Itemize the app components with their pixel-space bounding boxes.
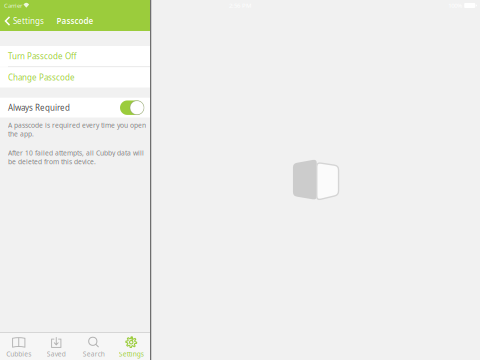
button[interactable]: Always Required	[0, 98, 150, 118]
staticText: Turn Passcode Off	[8, 51, 77, 61]
staticText: Always Required	[8, 102, 70, 113]
button[interactable]: Cubbies	[0, 333, 37, 360]
button[interactable]: Settings	[0, 11, 50, 31]
button[interactable]: Settings	[112, 333, 150, 360]
staticText: Change Passcode	[8, 72, 75, 83]
staticText: Settings	[13, 16, 44, 26]
staticText: Saved	[47, 349, 66, 358]
staticText: Cubbies	[6, 349, 31, 358]
staticText: Passcode	[56, 16, 93, 26]
button[interactable]: Search	[75, 333, 112, 360]
button[interactable]: Saved	[37, 333, 75, 360]
staticText: Search	[83, 349, 105, 358]
staticText: After 10 failed attempts, all Cubby data…	[8, 148, 144, 166]
button[interactable]: Change Passcode	[0, 67, 150, 88]
staticText: Carrier	[4, 1, 22, 10]
button[interactable]: Turn Passcode Off	[0, 46, 150, 66]
staticText: Settings	[119, 349, 144, 358]
staticText: A passcode is required every time you op…	[8, 121, 146, 138]
